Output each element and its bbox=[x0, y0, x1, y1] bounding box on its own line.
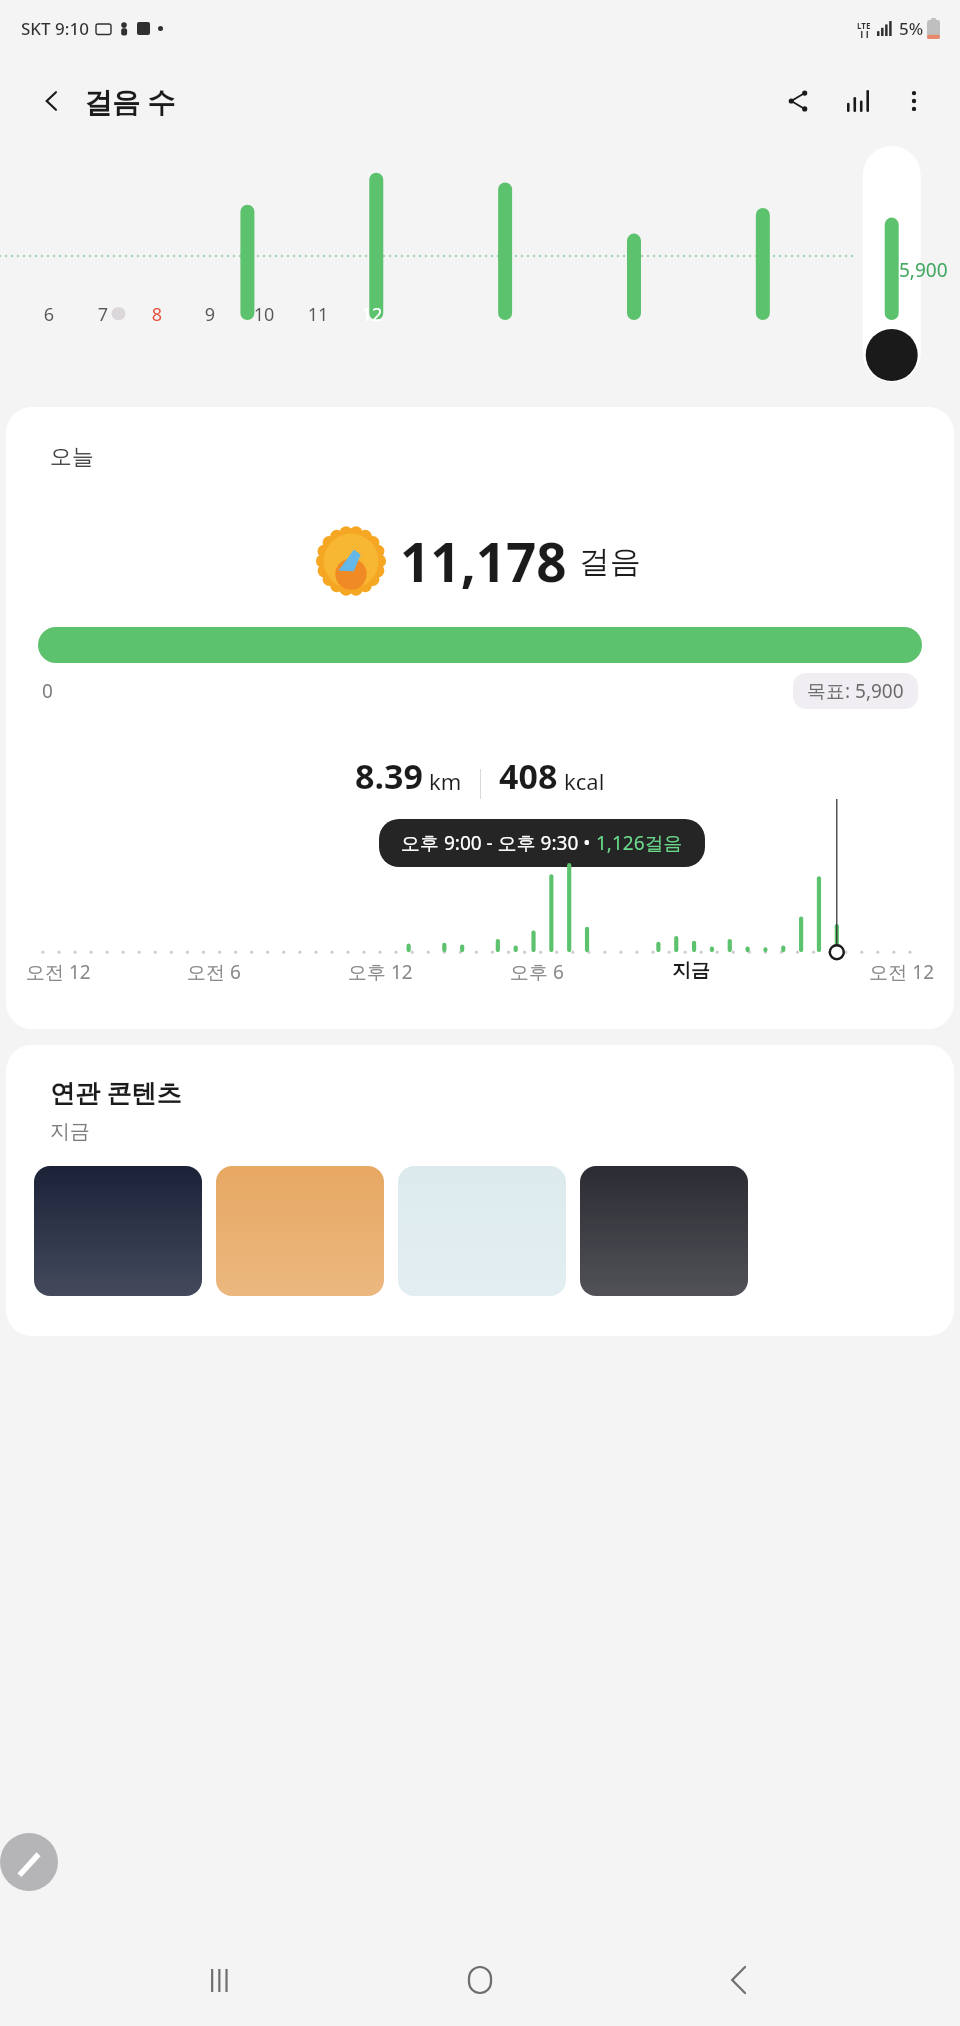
button[interactable]: Home bbox=[442, 1942, 518, 2018]
button[interactable]: 연관 콘텐츠 bbox=[6, 1045, 954, 1336]
button[interactable] bbox=[398, 1166, 566, 1296]
button[interactable]: 오늘 bbox=[6, 407, 954, 1029]
staticText: 오후 9:00 - 오후 9:30 • bbox=[401, 830, 596, 856]
staticText: 5,900 bbox=[899, 257, 948, 283]
button[interactable] bbox=[34, 1166, 202, 1296]
staticText: 걸음 bbox=[579, 542, 641, 581]
staticText: 7 bbox=[89, 302, 117, 327]
staticText: kcal bbox=[564, 766, 605, 796]
staticText: 8.39 bbox=[355, 753, 423, 799]
staticText: LTE bbox=[857, 20, 871, 31]
staticText: 0 bbox=[42, 678, 53, 704]
staticText: 10 bbox=[250, 302, 278, 327]
staticText: SKT 9:10 bbox=[21, 17, 89, 40]
staticText: 오전 6 bbox=[187, 959, 348, 985]
staticText: km bbox=[429, 766, 462, 796]
button[interactable]: Back bbox=[701, 1942, 777, 2018]
staticText: 5% bbox=[899, 17, 924, 40]
staticText: 오전 12 bbox=[26, 959, 187, 985]
staticText: 걸음 수 bbox=[84, 82, 176, 120]
staticText: 연관 콘텐츠 bbox=[50, 1075, 182, 1109]
staticText: 8 bbox=[143, 302, 171, 327]
staticText: 오후 6 bbox=[510, 959, 672, 985]
staticText: 6 bbox=[35, 302, 63, 327]
staticText: 오후 12 bbox=[348, 959, 510, 985]
staticText: 오전 12 bbox=[772, 959, 934, 985]
staticText: 408 bbox=[499, 753, 558, 799]
button[interactable] bbox=[216, 1166, 384, 1296]
staticText: 9 bbox=[196, 302, 224, 327]
staticText: 11 bbox=[304, 302, 332, 327]
staticText: 오늘 bbox=[50, 443, 94, 471]
button[interactable]: Back bbox=[30, 79, 74, 123]
staticText: 지금 bbox=[672, 959, 772, 983]
staticText: 1,126걸음 bbox=[596, 830, 683, 856]
staticText: 지금 bbox=[50, 1119, 90, 1144]
button[interactable]: More options bbox=[890, 77, 938, 125]
button[interactable]: Chart bbox=[834, 77, 882, 125]
button[interactable]: 오후 9:00 - 오후 9:30 • bbox=[401, 830, 683, 856]
button[interactable] bbox=[580, 1166, 748, 1296]
button[interactable]: Recents bbox=[183, 1942, 259, 2018]
staticText: 11,178 bbox=[400, 525, 567, 597]
button[interactable]: Share bbox=[774, 77, 822, 125]
staticText: 12 bbox=[358, 302, 386, 327]
button[interactable]: Edit bbox=[0, 1833, 58, 1891]
staticText: 목표: 5,900 bbox=[807, 678, 904, 704]
